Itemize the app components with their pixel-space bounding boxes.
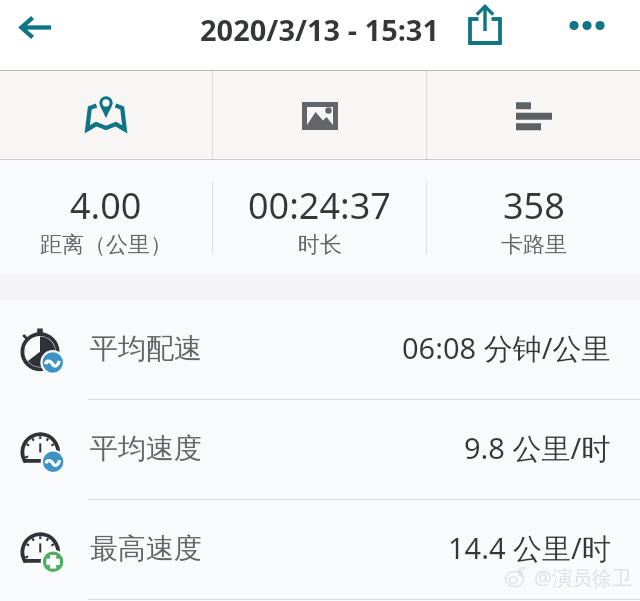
staticText: 平均速度 — [90, 431, 202, 466]
staticText: 4.00 — [70, 181, 142, 230]
staticText: 距离（公里） — [40, 231, 172, 259]
button[interactable]: 最高速度 — [0, 500, 640, 600]
button[interactable]: Share — [452, 0, 518, 60]
button[interactable]: Back — [0, 0, 72, 56]
button[interactable]: More options — [552, 0, 624, 56]
button[interactable]: Map — [0, 71, 212, 160]
staticText: 2020/3/13 - 15:31 — [200, 10, 440, 49]
button[interactable]: Photos — [213, 71, 426, 160]
staticText: 06:08 分钟/公里 — [402, 328, 611, 368]
staticText: @演员徐卫 — [534, 564, 632, 591]
staticText: 卡路里 — [501, 231, 567, 259]
button[interactable]: 平均配速 — [0, 300, 640, 400]
button[interactable]: 平均速度 — [0, 400, 640, 500]
staticText: 平均配速 — [90, 331, 202, 366]
staticText: 00:24:37 — [248, 181, 391, 230]
staticText: 9.8 公里/时 — [464, 428, 611, 468]
staticText: 时长 — [298, 231, 342, 259]
button[interactable]: Chart — [427, 71, 640, 160]
staticText: 358 — [503, 181, 565, 230]
staticText: 14.4 公里/时 — [448, 528, 611, 568]
staticText: 最高速度 — [90, 531, 202, 566]
